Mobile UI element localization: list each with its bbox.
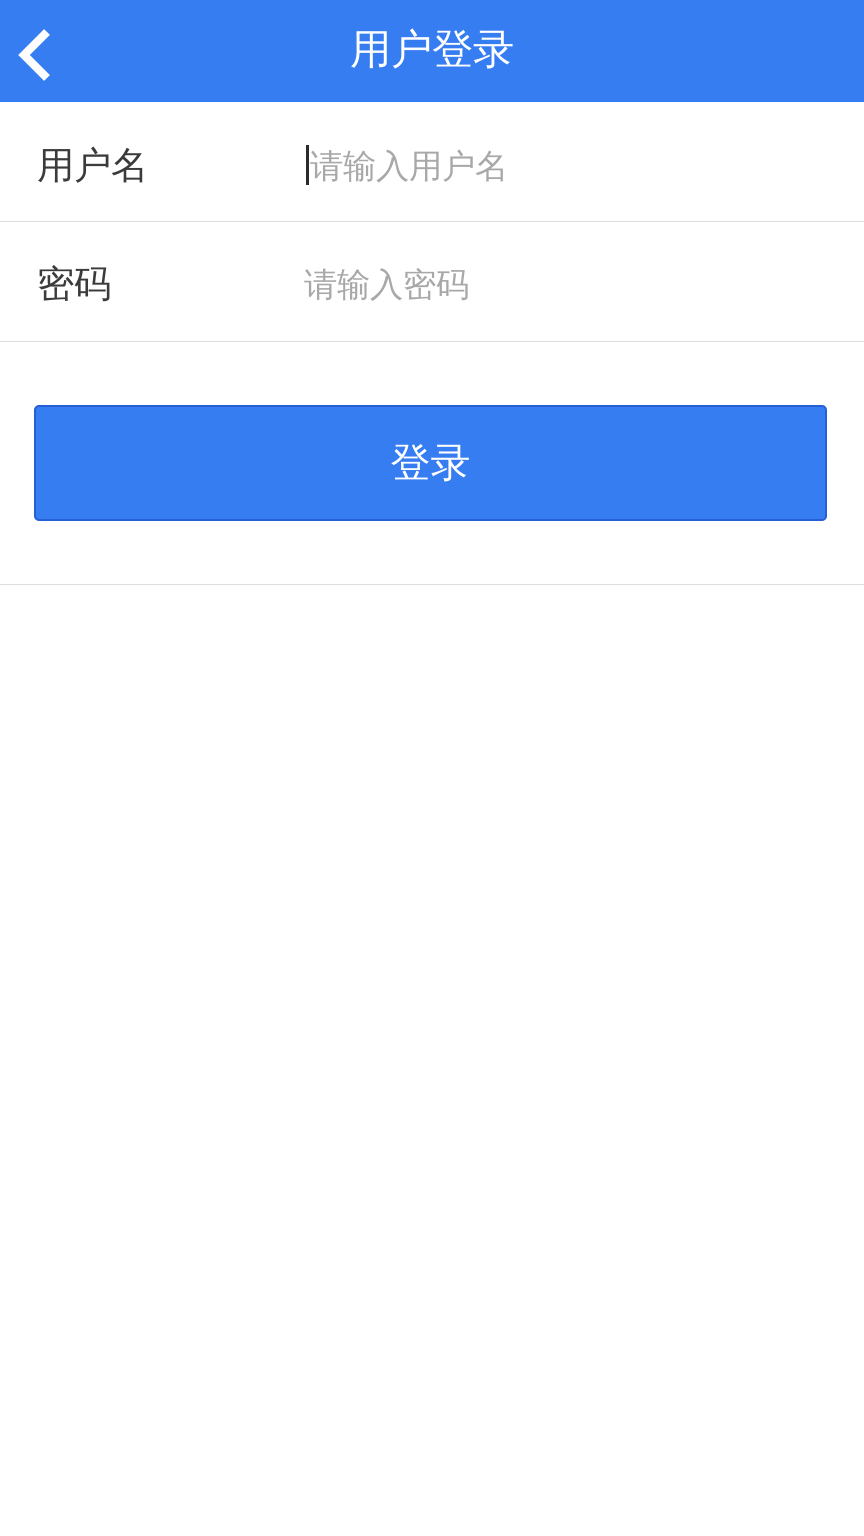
staticText: 用户登录 <box>350 24 514 75</box>
staticText: 登录 <box>390 438 470 487</box>
staticText: 用户名 <box>37 143 148 188</box>
staticText: 请输入密码 <box>304 264 469 305</box>
button[interactable]: 用户名 <box>0 102 864 221</box>
button[interactable]: 密码 <box>0 222 864 341</box>
staticText: 密码 <box>37 261 111 307</box>
button[interactable]: 登录 <box>35 406 826 520</box>
staticText: 请输入用户名 <box>310 146 508 187</box>
button[interactable]: 返回 <box>0 0 71 102</box>
